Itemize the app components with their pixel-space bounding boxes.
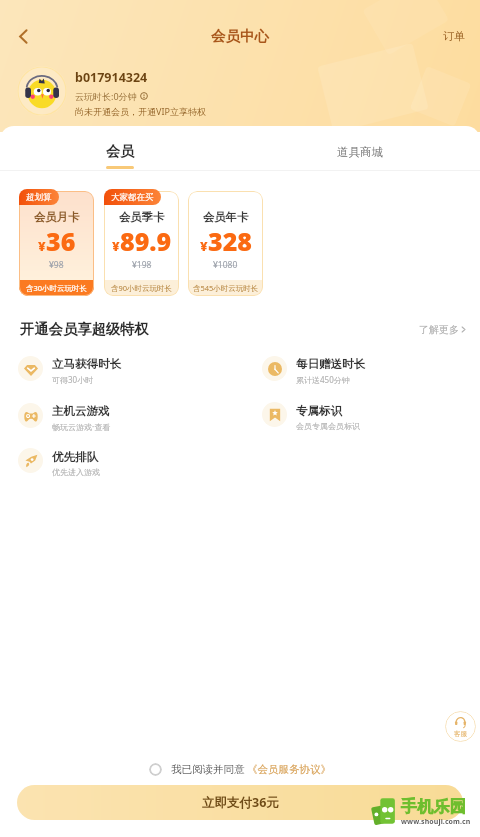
staticText: 《会员服务协议》 <box>247 763 331 776</box>
staticText: 89.9 <box>120 224 172 258</box>
button[interactable]: 会员季卡 <box>104 191 179 296</box>
button[interactable]: 每日赠送时长 <box>262 354 480 382</box>
button[interactable]: 会员年卡 <box>188 191 263 296</box>
button[interactable]: 返回 <box>4 17 42 55</box>
staticText: 客服 <box>454 730 467 738</box>
staticText: 尚未开通会员，开通VIP立享特权 <box>75 105 206 117</box>
staticText: 优先进入游戏 <box>52 467 100 477</box>
staticText: 立马获得时长 <box>52 357 121 371</box>
button[interactable]: 立即支付36元 <box>17 785 463 820</box>
staticText: 含30小时云玩时长 <box>26 283 88 293</box>
staticText: 会员月卡 <box>34 210 80 224</box>
staticText: 每日赠送时长 <box>296 357 365 371</box>
button[interactable]: 优先排队 <box>18 447 249 474</box>
staticText: 了解更多 <box>419 323 459 336</box>
staticText: 累计送450分钟 <box>296 374 350 385</box>
button[interactable]: 会员月卡 <box>19 191 94 296</box>
button[interactable]: 订单 <box>443 29 465 43</box>
staticText: 优先排队 <box>52 450 98 464</box>
staticText: 云玩时长:0分钟 <box>75 90 137 102</box>
staticText: 主机云游戏 <box>52 404 110 418</box>
staticText: 会员 <box>106 143 134 161</box>
staticText: 会员中心 <box>211 27 269 45</box>
staticText: 手机乐园 <box>401 797 467 817</box>
button[interactable]: 我已阅读并同意 <box>149 763 331 776</box>
staticText: 立即支付36元 <box>202 794 279 811</box>
staticText: 开通会员享超级特权 <box>20 320 149 338</box>
staticText: ¥1080 <box>213 259 238 271</box>
staticText: ¥ <box>200 237 208 255</box>
staticText: 畅玩云游戏·查看 <box>52 421 111 432</box>
staticText: 328 <box>208 224 252 258</box>
staticText: 会员专属会员标识 <box>296 421 360 431</box>
staticText: 超划算 <box>26 192 52 203</box>
button[interactable]: 会员 <box>0 126 240 170</box>
staticText: 订单 <box>443 29 465 43</box>
staticText: 含90小时云玩时长 <box>111 283 173 293</box>
staticText: 会员年卡 <box>203 210 249 224</box>
staticText: b017914324 <box>75 69 148 86</box>
staticText: 专属标识 <box>296 404 342 418</box>
button[interactable]: 道具商城 <box>240 126 480 170</box>
staticText: ¥198 <box>132 259 152 271</box>
button[interactable]: 主机云游戏 <box>18 401 249 429</box>
button[interactable]: 立马获得时长 <box>18 354 249 382</box>
button[interactable]: 客服 <box>445 711 476 742</box>
staticText: 大家都在买 <box>111 192 154 203</box>
staticText: ¥98 <box>49 259 64 271</box>
staticText: ¥ <box>38 237 46 255</box>
staticText: 含545小时云玩时长 <box>193 283 259 293</box>
staticText: 我已阅读并同意 <box>171 763 245 776</box>
button[interactable]: 了解更多 <box>419 323 468 336</box>
button[interactable]: 专属标识 <box>262 401 480 428</box>
staticText: www.shouji.com.cn <box>401 817 471 827</box>
staticText: ¥ <box>112 237 120 255</box>
staticText: 36 <box>46 224 76 258</box>
staticText: 道具商城 <box>337 145 383 159</box>
staticText: 会员季卡 <box>119 210 165 224</box>
staticText: 可得30小时 <box>52 374 94 385</box>
